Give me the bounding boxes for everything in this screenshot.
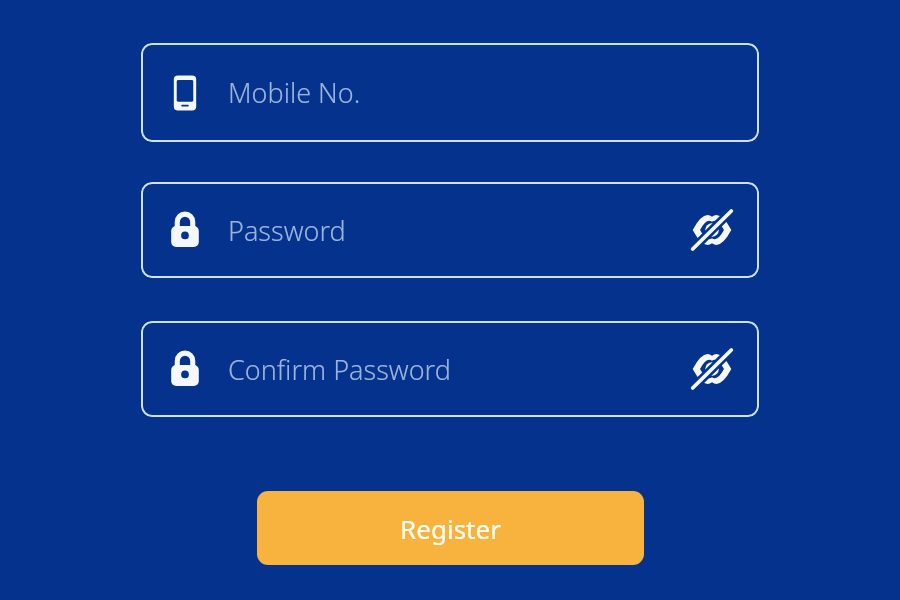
staticText: Password bbox=[228, 212, 346, 249]
button[interactable]: Mobile No. bbox=[141, 43, 759, 142]
staticText: Mobile No. bbox=[228, 74, 361, 111]
button[interactable]: Confirm Password bbox=[141, 321, 759, 417]
staticText: Confirm Password bbox=[228, 351, 451, 388]
button[interactable]: Register bbox=[257, 491, 644, 565]
staticText: Register bbox=[400, 511, 501, 546]
button[interactable]: Show password bbox=[689, 346, 735, 392]
button[interactable]: Password bbox=[141, 182, 759, 278]
button[interactable]: Show password bbox=[689, 207, 735, 253]
